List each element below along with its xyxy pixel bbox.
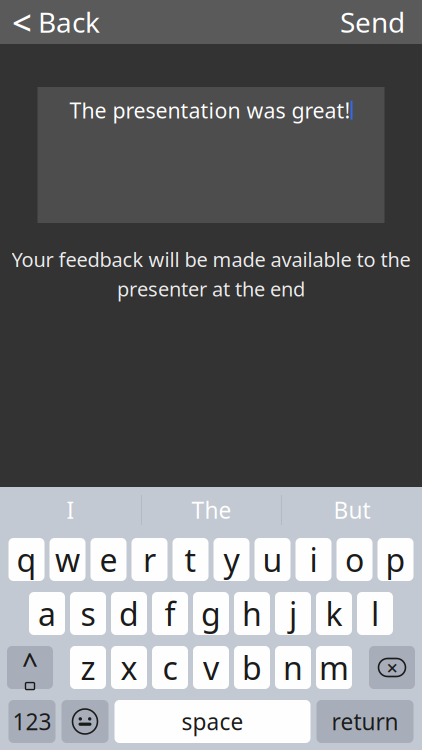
button[interactable]: But <box>282 487 422 533</box>
staticText: h <box>242 592 262 635</box>
staticText: b <box>242 646 262 689</box>
button[interactable]: m <box>316 646 352 689</box>
button[interactable]: Emoji <box>61 700 108 743</box>
button[interactable]: Send <box>340 0 422 44</box>
staticText: x <box>120 646 137 689</box>
button[interactable]: w <box>49 538 85 581</box>
button[interactable]: n <box>275 646 311 689</box>
button[interactable]: y <box>213 538 249 581</box>
staticText: The <box>191 495 231 525</box>
staticText: n <box>283 646 303 689</box>
staticText: Back <box>38 3 100 41</box>
staticText: z <box>80 646 95 689</box>
button[interactable]: k <box>316 592 352 635</box>
button[interactable]: 123 <box>8 700 55 743</box>
button[interactable]: b <box>234 646 270 689</box>
staticText: × <box>386 654 397 681</box>
button[interactable]: c <box>152 646 188 689</box>
staticText: 123 <box>12 706 51 736</box>
staticText: w <box>55 538 80 581</box>
staticText: space <box>181 706 243 736</box>
button[interactable]: o <box>336 538 372 581</box>
staticText: c <box>162 646 177 689</box>
staticText: u <box>262 538 282 581</box>
staticText: I <box>66 495 74 525</box>
staticText: t <box>184 538 196 581</box>
button[interactable]: r <box>131 538 167 581</box>
staticText: e <box>99 538 117 581</box>
button[interactable]: u <box>254 538 290 581</box>
button[interactable]: d <box>111 592 147 635</box>
button[interactable]: z <box>70 646 106 689</box>
button[interactable]: t <box>172 538 208 581</box>
staticText: m <box>319 646 349 689</box>
button[interactable]: p <box>377 538 413 581</box>
staticText: q <box>16 538 36 581</box>
staticText: g <box>201 592 221 635</box>
button[interactable]: x <box>111 646 147 689</box>
staticText: v <box>203 646 219 689</box>
staticText: s <box>80 592 95 635</box>
staticText: y <box>223 538 239 581</box>
button[interactable]: g <box>193 592 229 635</box>
staticText: Your feedback will be made available to … <box>11 246 410 273</box>
staticText: p <box>385 538 405 581</box>
button[interactable]: space <box>114 700 310 743</box>
button[interactable]: f <box>152 592 188 635</box>
staticText: But <box>333 495 370 525</box>
button[interactable]: a <box>29 592 65 635</box>
staticText: d <box>119 592 139 635</box>
staticText: Send <box>340 3 405 41</box>
button[interactable]: e <box>90 538 126 581</box>
button[interactable]: h <box>234 592 270 635</box>
button[interactable]: v <box>193 646 229 689</box>
staticText: presenter at the end <box>117 276 305 302</box>
staticText: j <box>289 592 297 635</box>
staticText: k <box>325 592 342 635</box>
staticText: return <box>331 706 398 736</box>
button[interactable]: Shift <box>7 646 53 689</box>
staticText: r <box>143 538 156 581</box>
button[interactable]: Delete <box>369 646 415 689</box>
staticText: < <box>12 0 32 45</box>
staticText: ^ <box>22 645 38 683</box>
button[interactable]: l <box>357 592 393 635</box>
button[interactable]: return <box>316 700 413 743</box>
staticText: f <box>164 592 175 635</box>
staticText: o <box>345 538 364 581</box>
button[interactable]: The <box>142 487 281 533</box>
button[interactable]: s <box>70 592 106 635</box>
staticText: a <box>38 592 56 635</box>
button[interactable]: < <box>0 0 110 44</box>
staticText: The presentation was great! <box>69 96 350 124</box>
button[interactable]: q <box>8 538 44 581</box>
button[interactable]: j <box>275 592 311 635</box>
button[interactable]: I <box>0 487 141 533</box>
button[interactable]: i <box>295 538 331 581</box>
staticText: i <box>309 538 317 581</box>
staticText: l <box>371 592 379 635</box>
